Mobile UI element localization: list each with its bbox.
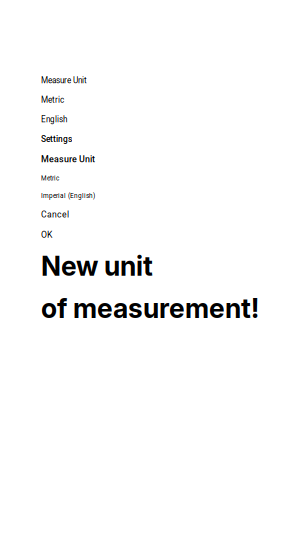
staticText: Metric <box>41 174 59 182</box>
staticText: Measure Unit <box>41 154 95 164</box>
staticText: Cancel <box>41 210 69 220</box>
staticText: Imperial (English) <box>41 192 95 200</box>
staticText: OK <box>41 230 52 240</box>
staticText: Measure Unit <box>41 76 87 85</box>
staticText: New unit <box>41 250 153 282</box>
staticText: Metric <box>41 95 64 105</box>
staticText: English <box>41 115 67 124</box>
staticText: Settings <box>41 134 72 144</box>
staticText: of measurement! <box>41 292 259 324</box>
